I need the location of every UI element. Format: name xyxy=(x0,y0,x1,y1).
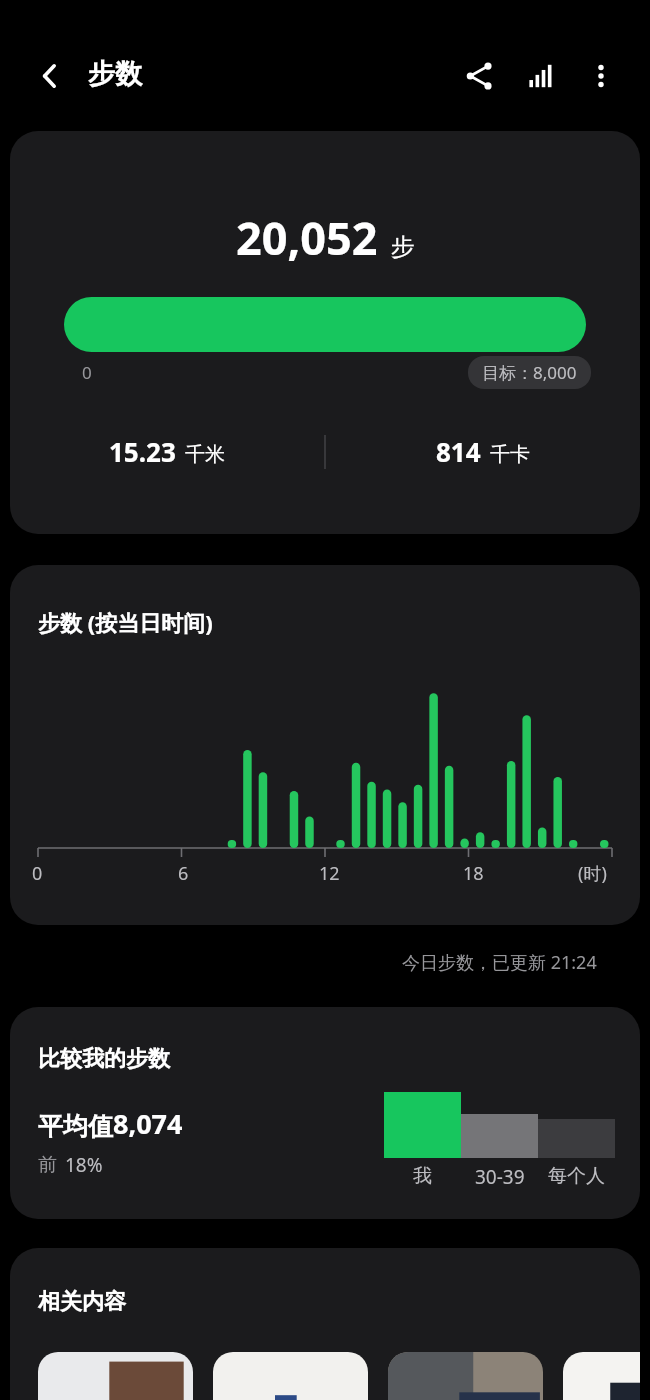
staticText: 千卡 xyxy=(490,442,530,467)
button[interactable]: 步数 (按当日时间) xyxy=(10,565,640,925)
staticText: 0 xyxy=(82,361,92,384)
button[interactable]: Share xyxy=(451,48,507,104)
staticText: 我 xyxy=(413,1164,432,1188)
staticText: 平均值 xyxy=(38,1111,113,1142)
button[interactable]: Statistics xyxy=(513,48,569,104)
staticText: 12 xyxy=(319,861,340,886)
button[interactable]: Back xyxy=(22,48,78,104)
button[interactable]: Related article xyxy=(38,1352,193,1400)
staticText: (时) xyxy=(578,861,607,886)
staticText: 千米 xyxy=(185,442,225,467)
staticText: 今日步数，已更新 21:24 xyxy=(402,950,597,975)
staticText: 比较我的步数 xyxy=(38,1045,170,1073)
staticText: 6 xyxy=(178,861,189,886)
staticText: 步数 (按当日时间) xyxy=(38,607,213,637)
button[interactable]: Related article xyxy=(563,1352,640,1400)
staticText: 目标：8,000 xyxy=(482,361,577,384)
staticText: 步 xyxy=(391,232,415,262)
staticText: 30-39 xyxy=(475,1164,525,1190)
staticText: 步数 xyxy=(88,57,142,91)
button[interactable]: 20,052 xyxy=(10,131,640,534)
staticText: 814 xyxy=(436,434,481,469)
button[interactable]: Related article xyxy=(213,1352,368,1400)
staticText: 相关内容 xyxy=(38,1288,126,1316)
staticText: 20,052 xyxy=(236,207,378,268)
staticText: 0 xyxy=(32,861,43,886)
staticText: 8,074 xyxy=(113,1105,183,1142)
staticText: 每个人 xyxy=(548,1164,605,1188)
button[interactable]: Related article xyxy=(388,1352,543,1400)
staticText: 18% xyxy=(65,1152,103,1178)
staticText: 18 xyxy=(463,861,484,886)
staticText: 前 xyxy=(38,1153,57,1177)
button[interactable]: More options xyxy=(573,48,629,104)
button[interactable]: 比较我的步数 xyxy=(10,1007,640,1219)
staticText: 15.23 xyxy=(109,434,176,469)
